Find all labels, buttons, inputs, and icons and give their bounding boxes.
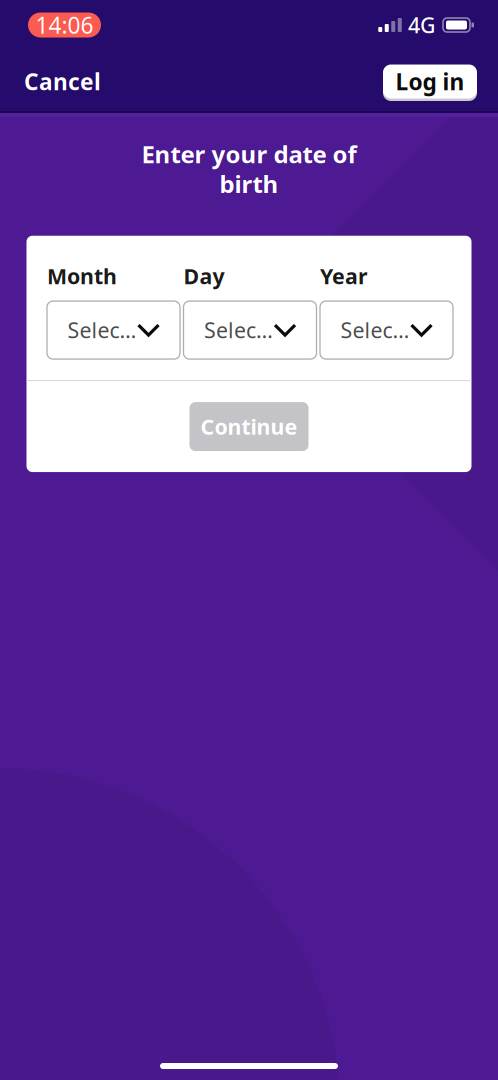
staticText: Continue xyxy=(200,412,297,441)
staticText: Month xyxy=(47,262,117,290)
staticText: Selec… xyxy=(340,316,409,344)
button[interactable]: Selec… xyxy=(47,301,180,359)
staticText: Year xyxy=(320,262,368,290)
staticText: Cancel xyxy=(24,66,101,96)
staticText: Day xyxy=(183,262,224,290)
staticText: Log in xyxy=(395,66,464,96)
button[interactable]: Log in xyxy=(383,61,477,101)
staticText: Selec… xyxy=(67,316,136,344)
button[interactable]: Cancel xyxy=(24,54,101,108)
staticText: Selec… xyxy=(204,316,273,344)
button[interactable]: Continue xyxy=(189,402,308,451)
staticText: 14:06 xyxy=(35,10,93,40)
staticText: Enter your date of xyxy=(141,138,356,170)
staticText: 4G xyxy=(408,11,436,39)
button[interactable]: Selec… xyxy=(320,301,453,359)
button[interactable]: Selec… xyxy=(183,301,316,359)
staticText: birth xyxy=(219,168,278,200)
